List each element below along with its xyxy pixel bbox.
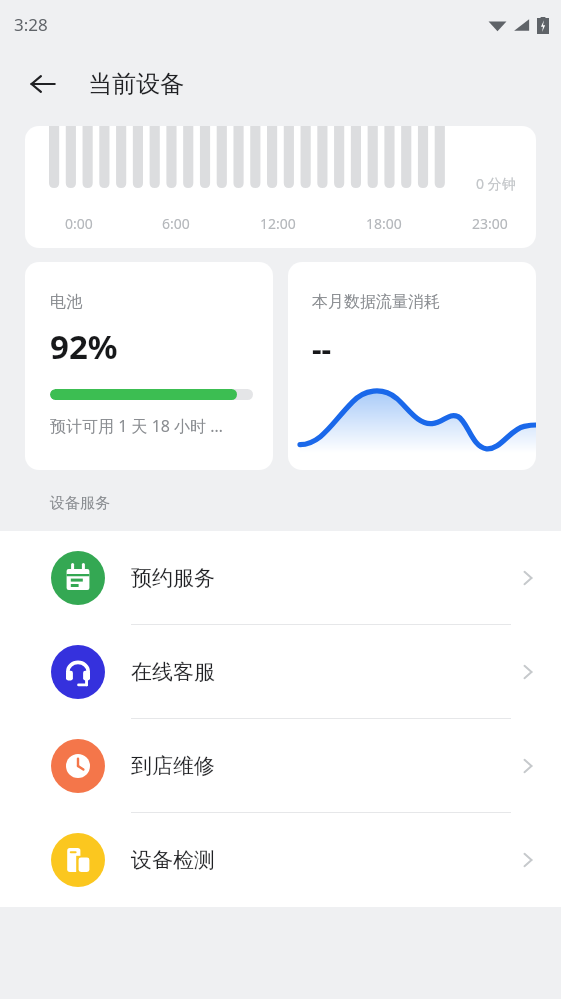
staticText: 0:00 (65, 214, 93, 233)
staticText: 0 分钟 (476, 174, 516, 193)
staticText: 92% (50, 324, 118, 369)
staticText: 12:00 (260, 214, 296, 233)
staticText: 在线客服 (131, 659, 215, 685)
staticText: 3:28 (14, 13, 48, 36)
staticText: 电池 (50, 292, 82, 312)
button[interactable]: 设备检测 (0, 813, 561, 907)
staticText: 6:00 (162, 214, 190, 233)
staticText: 设备检测 (131, 847, 215, 873)
button[interactable]: 本月数据流量消耗 (288, 262, 536, 470)
staticText: 18:00 (366, 214, 402, 233)
staticText: 当前设备 (88, 69, 184, 99)
button[interactable]: 电池 (25, 262, 273, 470)
button[interactable]: Back (18, 59, 68, 109)
staticText: 本月数据流量消耗 (312, 292, 440, 312)
staticText: 23:00 (472, 214, 508, 233)
staticText: 预约服务 (131, 565, 215, 591)
button[interactable]: 预约服务 (0, 531, 561, 625)
staticText: 到店维修 (131, 753, 215, 779)
button[interactable]: 0 分钟 (25, 126, 536, 248)
staticText: -- (312, 328, 332, 369)
button[interactable]: 到店维修 (0, 719, 561, 813)
staticText: 设备服务 (50, 494, 110, 513)
staticText: 预计可用 1 天 18 小时 … (50, 415, 223, 437)
button[interactable]: 在线客服 (0, 625, 561, 719)
